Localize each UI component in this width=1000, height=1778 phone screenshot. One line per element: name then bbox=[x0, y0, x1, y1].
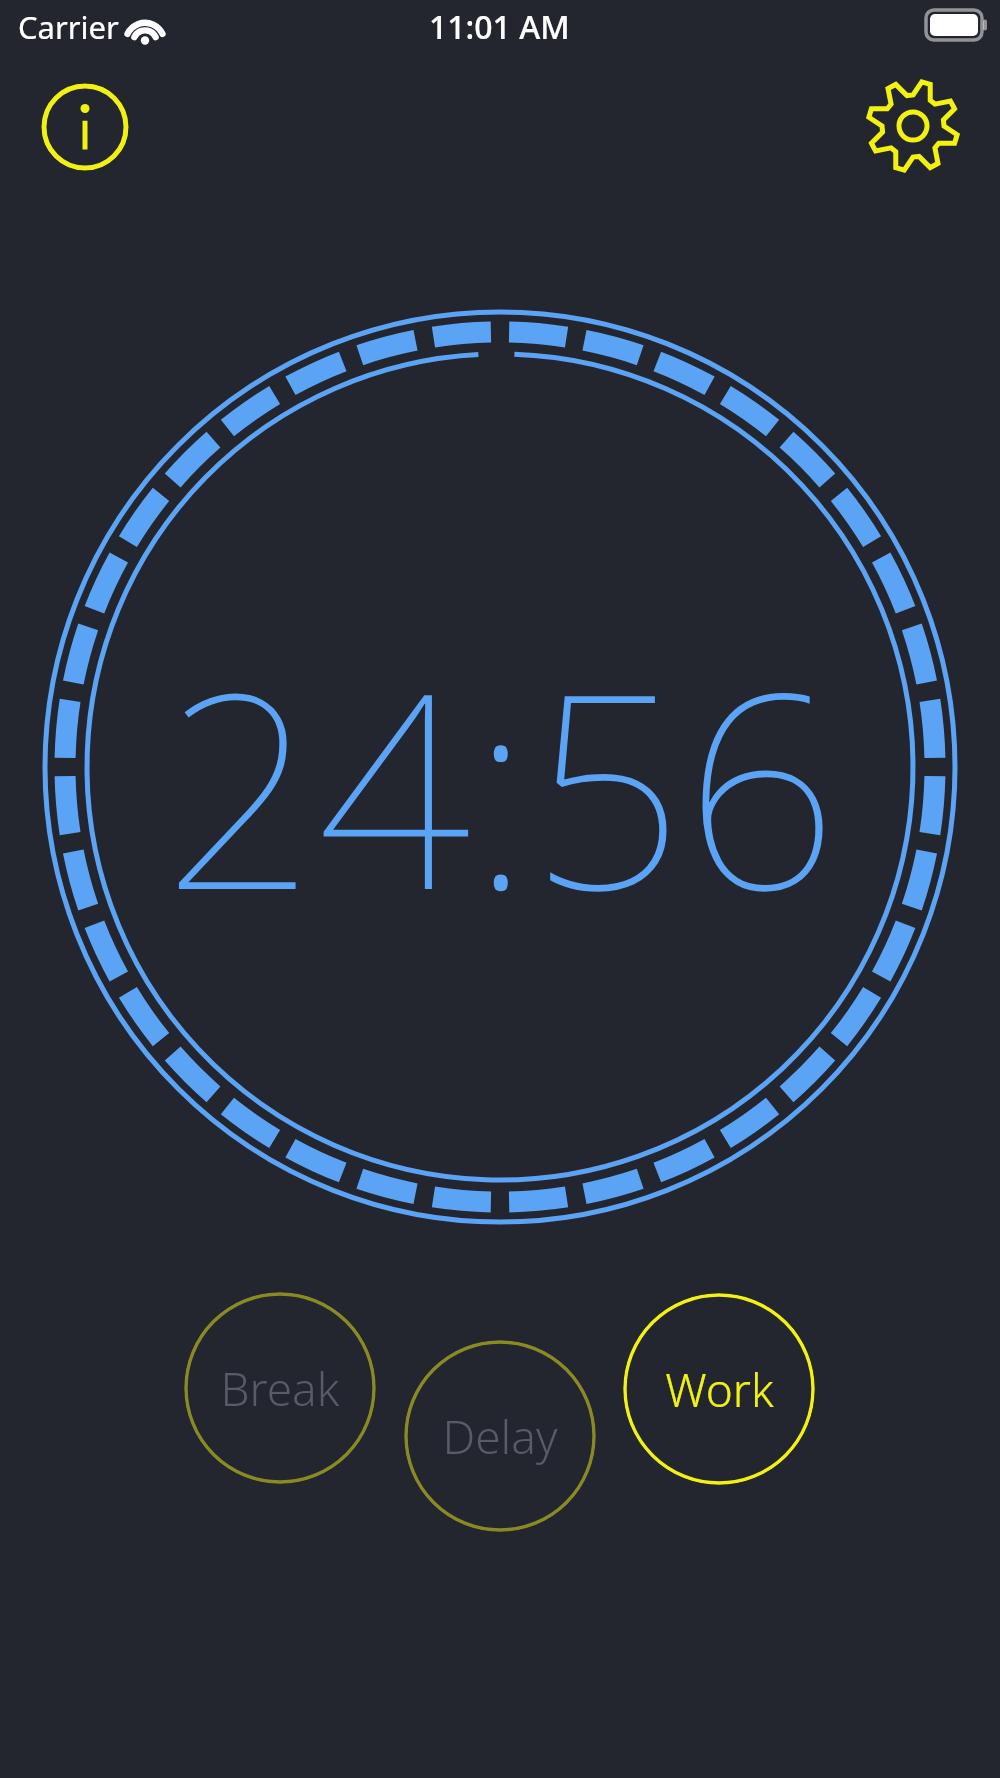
button[interactable]: Settings bbox=[863, 76, 963, 176]
staticText: Work bbox=[665, 1358, 774, 1421]
staticText: Break bbox=[220, 1357, 340, 1420]
staticText: Delay bbox=[442, 1405, 558, 1468]
button[interactable]: Info bbox=[41, 83, 129, 171]
staticText: 11:01 AM bbox=[429, 5, 570, 49]
button[interactable]: Break bbox=[184, 1292, 376, 1484]
button[interactable]: Work bbox=[623, 1293, 815, 1485]
button[interactable]: Delay bbox=[404, 1340, 596, 1532]
staticText: 24:56 bbox=[163, 600, 838, 968]
staticText: Carrier bbox=[18, 6, 119, 48]
